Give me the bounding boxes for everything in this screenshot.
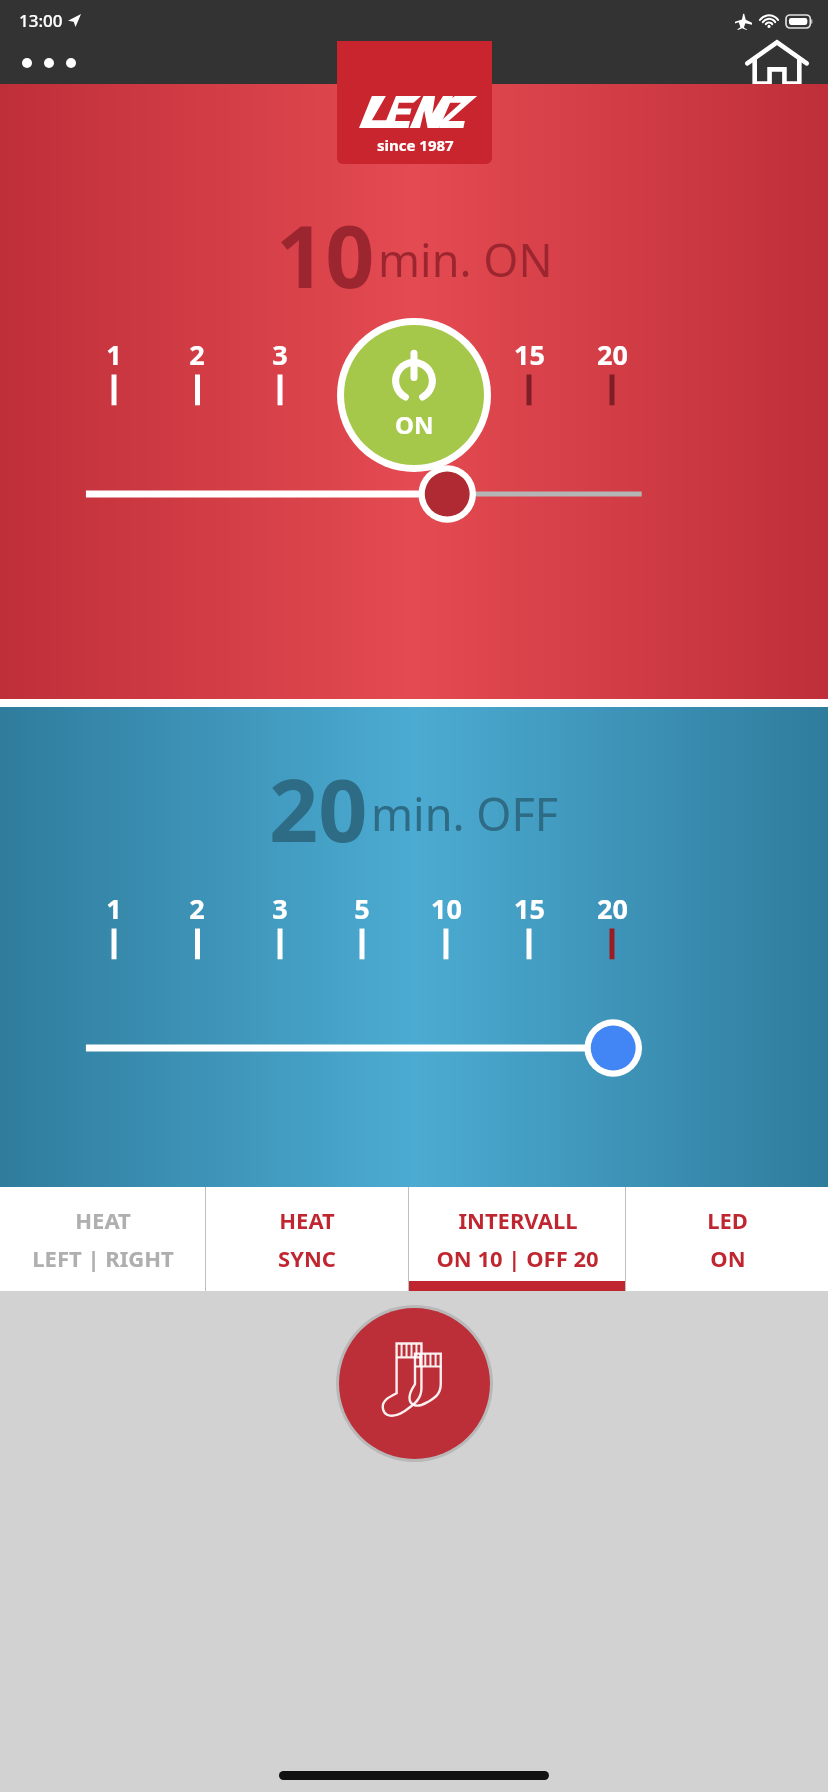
button[interactable]: 20: [584, 336, 640, 406]
staticText: LEFT | RIGHT: [32, 1243, 174, 1273]
button[interactable]: [0, 458, 828, 530]
staticText: 1: [106, 336, 122, 373]
staticText: 5: [354, 890, 370, 927]
button[interactable]: 1: [86, 890, 142, 960]
button[interactable]: 2: [169, 336, 225, 406]
button[interactable]: 3: [252, 336, 308, 406]
staticText: HEAT: [279, 1205, 335, 1235]
staticText: 20: [269, 750, 368, 867]
staticText: min. ON: [378, 229, 553, 290]
staticText: 2: [189, 336, 205, 373]
button[interactable]: since 1987: [337, 41, 492, 164]
button[interactable]: 10: [418, 890, 474, 960]
staticText: 10: [276, 196, 375, 313]
button[interactable]: Home: [746, 41, 808, 84]
staticText: ON: [710, 1243, 746, 1273]
button[interactable]: HEAT: [0, 1187, 205, 1291]
button[interactable]: 1: [86, 336, 142, 406]
button[interactable]: [0, 1012, 828, 1084]
button[interactable]: 20: [584, 890, 640, 960]
staticText: 1: [106, 890, 122, 927]
staticText: 2: [189, 890, 205, 927]
button[interactable]: 2: [169, 890, 225, 960]
button[interactable]: 10: [418, 336, 474, 406]
staticText: since 1987: [377, 135, 454, 155]
staticText: INTERVALL: [458, 1205, 578, 1235]
button[interactable]: Socks device: [339, 1308, 490, 1459]
staticText: 3: [272, 336, 288, 373]
button[interactable]: INTERVALL: [409, 1187, 625, 1291]
button[interactable]: Power ON: [344, 325, 484, 465]
staticText: ON: [395, 408, 434, 441]
staticText: 5: [354, 336, 370, 373]
button[interactable]: 5: [334, 890, 390, 960]
staticText: 15: [514, 890, 545, 927]
button[interactable]: Menu: [16, 48, 82, 78]
button[interactable]: 15: [501, 336, 557, 406]
staticText: HEAT: [75, 1205, 131, 1235]
staticText: LED: [707, 1205, 748, 1235]
staticText: 3: [272, 890, 288, 927]
staticText: 10: [431, 336, 462, 373]
button[interactable]: 3: [252, 890, 308, 960]
staticText: 20: [597, 890, 628, 927]
staticText: SYNC: [278, 1243, 336, 1273]
staticText: ON 10 | OFF 20: [436, 1243, 599, 1273]
staticText: 10: [431, 890, 462, 927]
button[interactable]: HEAT: [206, 1187, 408, 1291]
button[interactable]: LED: [626, 1187, 828, 1291]
staticText: 13:00: [19, 9, 63, 32]
button[interactable]: 15: [501, 890, 557, 960]
staticText: 20: [597, 336, 628, 373]
staticText: min. OFF: [371, 783, 559, 844]
button[interactable]: 5: [334, 336, 390, 406]
staticText: 15: [514, 336, 545, 373]
